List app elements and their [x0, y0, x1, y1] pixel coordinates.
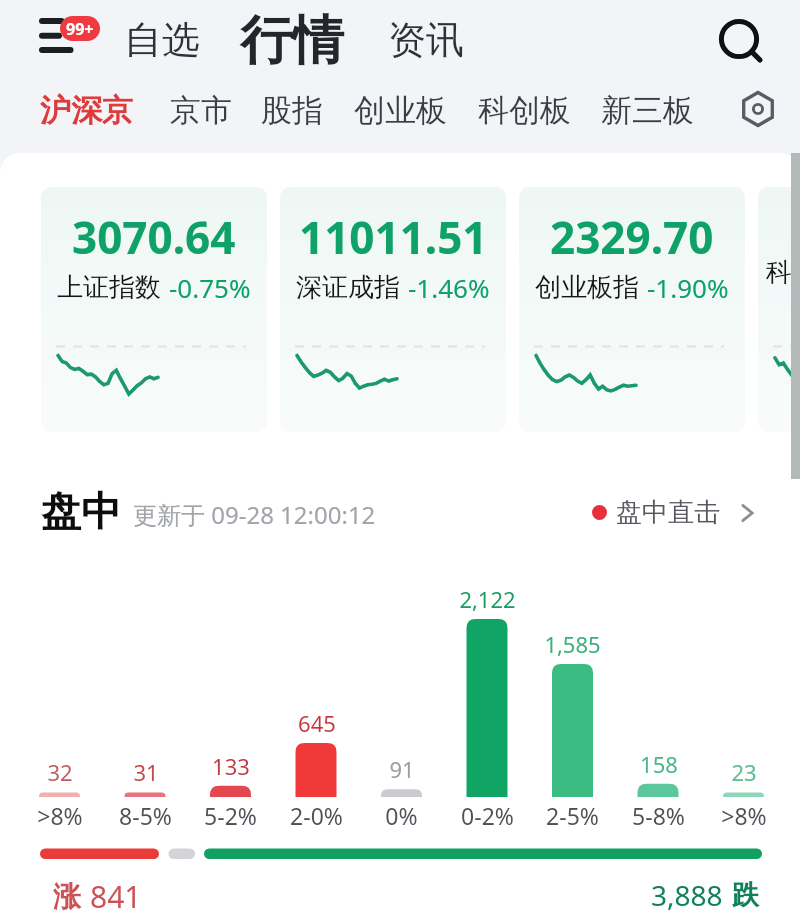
staticText: 841	[90, 876, 142, 915]
staticText: 科创板	[478, 91, 571, 130]
staticText: 31	[133, 757, 159, 787]
button[interactable]: 新三板	[593, 85, 702, 136]
button[interactable]: 行情	[234, 8, 350, 74]
staticText: 8-5%	[119, 800, 172, 831]
button[interactable]: 科	[758, 187, 800, 432]
staticText: 3070.64	[72, 207, 236, 267]
staticText: 1,585	[544, 629, 601, 659]
staticText: 跌	[732, 878, 759, 912]
staticText: 自选	[124, 16, 200, 64]
staticText: >8%	[37, 800, 83, 831]
staticText: 深证成指	[296, 271, 400, 304]
staticText: 盘中	[41, 486, 121, 536]
staticText: 创业板	[354, 91, 447, 130]
staticText: -0.75%	[169, 270, 251, 305]
button[interactable]: 科创板	[470, 85, 579, 136]
staticText: 涨	[53, 879, 81, 914]
staticText: 2329.70	[550, 207, 714, 267]
staticText: 2,122	[459, 584, 516, 614]
staticText: -1.90%	[647, 270, 729, 305]
button[interactable]: 盘中直击	[588, 492, 764, 533]
staticText: 更新于 09-28 12:00:12	[133, 498, 376, 531]
button[interactable]: Menu	[22, 8, 106, 70]
staticText: 行情	[240, 8, 344, 74]
staticText: 3,888	[651, 876, 723, 914]
button[interactable]: 沪深京	[32, 85, 141, 136]
staticText: 133	[212, 751, 250, 781]
button[interactable]: 股指	[253, 85, 331, 136]
staticText: 京市	[170, 91, 232, 130]
button[interactable]: 京市	[162, 85, 240, 136]
staticText: >8%	[721, 800, 767, 831]
staticText: 2-0%	[290, 800, 343, 831]
button[interactable]: 3070.64	[41, 187, 267, 432]
staticText: 645	[298, 708, 336, 738]
staticText: 5-8%	[632, 800, 685, 831]
staticText: 科	[766, 256, 792, 289]
staticText: 创业板指	[535, 271, 639, 304]
staticText: 23	[731, 757, 757, 787]
staticText: 2-5%	[546, 800, 599, 831]
staticText: 32	[47, 757, 73, 787]
button[interactable]: Settings	[734, 85, 782, 133]
staticText: 0%	[385, 800, 418, 831]
button[interactable]: 资讯	[382, 16, 470, 64]
button[interactable]: 自选	[118, 16, 206, 64]
button[interactable]: 创业板	[346, 85, 455, 136]
staticText: 新三板	[601, 91, 694, 130]
staticText: 上证指数	[57, 271, 161, 304]
staticText: 91	[389, 754, 415, 784]
staticText: 99+	[66, 18, 94, 40]
staticText: 158	[640, 749, 678, 779]
staticText: 盘中直击	[616, 496, 720, 529]
staticText: 沪深京	[40, 91, 133, 130]
staticText: 11011.51	[299, 207, 488, 267]
button[interactable]: 2329.70	[519, 187, 745, 432]
staticText: 资讯	[388, 16, 464, 64]
button[interactable]: Search	[707, 7, 771, 71]
staticText: 股指	[261, 91, 323, 130]
staticText: 5-2%	[204, 800, 257, 831]
button[interactable]: 11011.51	[280, 187, 506, 432]
staticText: -1.46%	[408, 270, 490, 305]
staticText: 0-2%	[461, 800, 514, 831]
